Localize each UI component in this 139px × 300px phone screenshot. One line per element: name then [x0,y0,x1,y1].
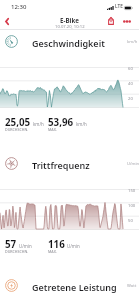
staticText: 25,05 [5,116,31,129]
staticText: U/min [19,243,32,249]
staticText: 20 [128,96,133,102]
staticText: 40 [128,81,133,87]
staticText: 100 [128,203,136,209]
button[interactable]: Geschwindigkeit [0,35,139,51]
staticText: U/min [67,243,80,249]
staticText: Getretene Leistung [32,281,117,293]
button[interactable]: Back [0,13,14,30]
staticText: E-Bike [60,16,79,24]
staticText: LTE [115,3,123,10]
staticText: Watt [127,283,137,289]
staticText: km/h [33,121,44,127]
staticText: km/h [76,121,87,127]
staticText: Geschwindigkeit [32,37,105,49]
staticText: U/min [127,161,139,167]
button[interactable]: Trittfrequenz [0,157,139,173]
staticText: DURCHSCHN. [5,249,29,254]
staticText: DURCHSCHN. [5,127,29,132]
staticText: 53,96 [48,116,74,129]
staticText: 12:30 [11,3,27,11]
staticText: 116 [48,238,65,251]
staticText: 57 [5,238,17,251]
staticText: 150 [128,188,136,194]
button[interactable]: More options [119,13,134,29]
staticText: MAX. [48,127,57,132]
staticText: Trittfrequenz [32,159,90,171]
staticText: 60 [128,66,133,72]
staticText: km/h [127,39,138,45]
button[interactable]: Getretene Leistung [0,279,139,295]
staticText: MAX. [48,249,57,254]
staticText: 50 [128,218,133,224]
button[interactable]: Share [104,13,118,29]
staticText: 10.07.20, 10:12 [55,24,85,30]
